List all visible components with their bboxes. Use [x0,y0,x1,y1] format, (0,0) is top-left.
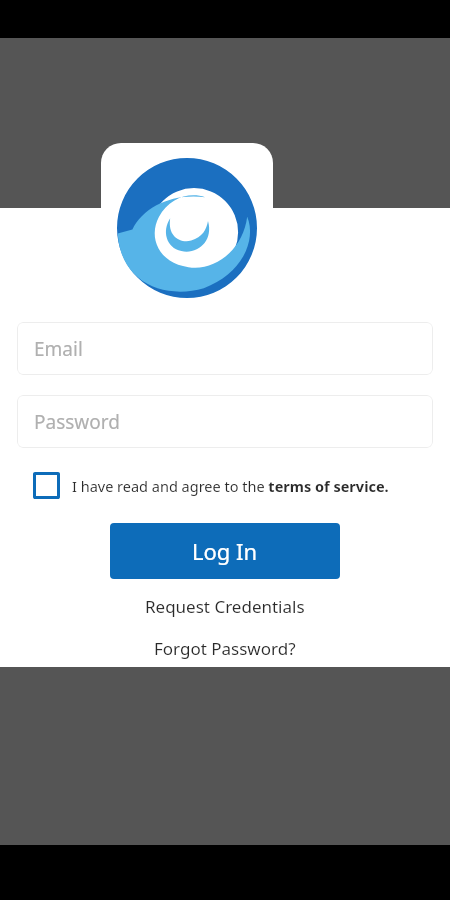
button[interactable]: Password [17,395,433,448]
staticText: I have read and agree to the terms of se… [72,476,389,496]
staticText: Log In [192,536,258,566]
button[interactable]: Request Credentials [137,591,313,622]
other: Agree to terms of service [33,472,60,499]
button[interactable]: Agree to terms of service [33,472,389,499]
staticText: Email [34,336,83,362]
staticText: Request Credentials [145,595,305,618]
button[interactable]: Forgot Password? [146,633,304,664]
staticText: Forgot Password? [154,637,296,660]
staticText: Password [34,409,120,435]
button[interactable]: Email [17,322,433,375]
button[interactable]: Log In [110,523,340,579]
